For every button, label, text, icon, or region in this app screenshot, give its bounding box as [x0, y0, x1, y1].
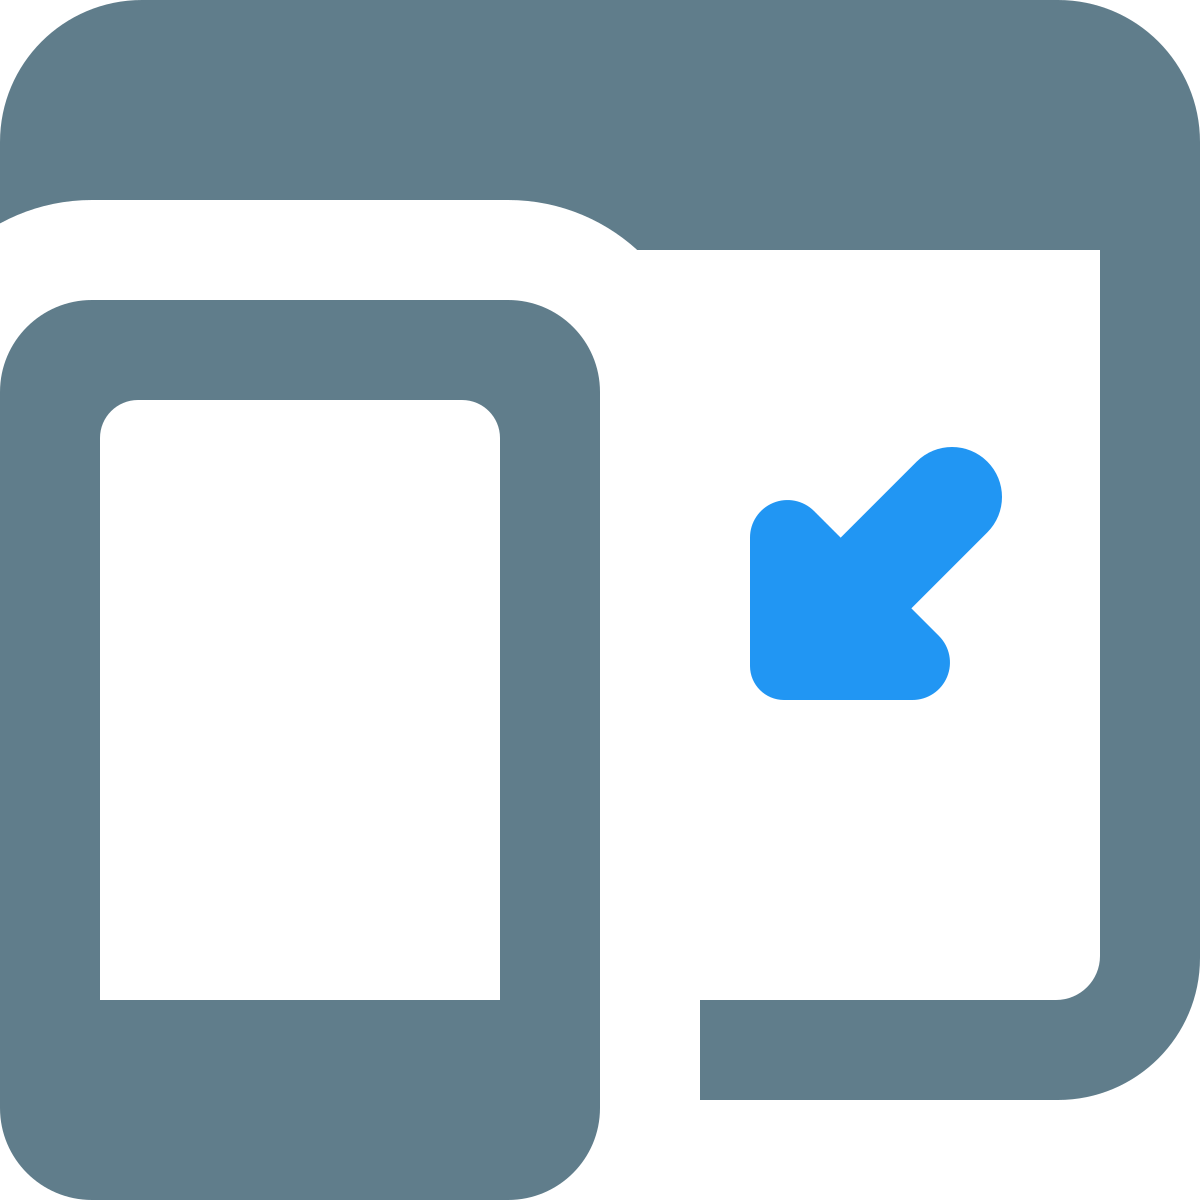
button[interactable]: Move playback to iPhone [0, 0, 1200, 1200]
